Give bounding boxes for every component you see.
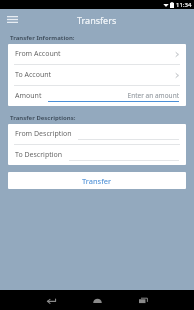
- staticText: To Description: [15, 150, 63, 160]
- button[interactable]: Menu: [0, 9, 24, 30]
- button[interactable]: Transfer: [8, 172, 186, 189]
- staticText: Transfers: [77, 14, 117, 26]
- staticText: Amount: [15, 91, 42, 101]
- button[interactable]: Home: [79, 290, 115, 310]
- button[interactable]: Amount: [8, 86, 186, 106]
- staticText: Enter an amount: [127, 91, 179, 100]
- button[interactable]: To Description: [8, 145, 186, 165]
- staticText: To Account: [15, 70, 175, 80]
- button[interactable]: Recents: [125, 290, 161, 310]
- staticText: From Account: [15, 49, 175, 59]
- staticText: Transfer Descriptions:: [10, 114, 76, 122]
- staticText: From Description: [15, 129, 72, 139]
- staticText: Transfer: [82, 176, 112, 186]
- button[interactable]: To Account: [8, 65, 186, 85]
- button[interactable]: Back: [33, 290, 69, 310]
- button[interactable]: From Description: [8, 124, 186, 144]
- staticText: 11:34: [176, 1, 192, 9]
- button[interactable]: From Account: [8, 44, 186, 64]
- staticText: Transfer Information:: [10, 34, 75, 42]
